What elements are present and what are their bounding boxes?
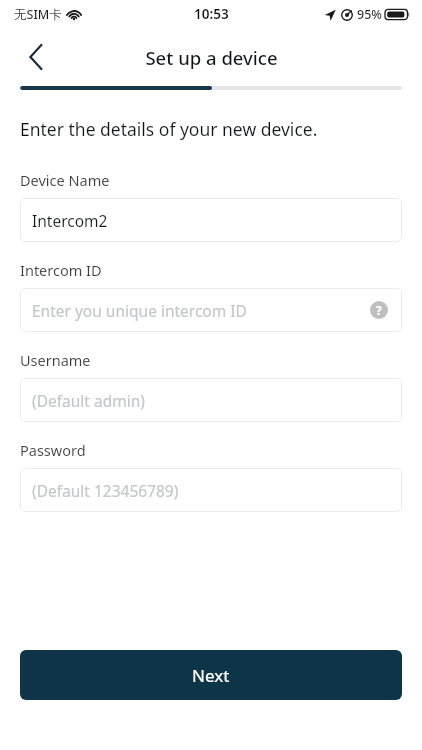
staticText: 无SIM卡 bbox=[14, 6, 62, 23]
staticText: 95% bbox=[357, 6, 382, 23]
staticText: 10:53 bbox=[194, 5, 229, 23]
button[interactable]: Back bbox=[16, 37, 56, 77]
staticText: Enter the details of your new device. bbox=[20, 117, 318, 141]
button[interactable]: Intercom2 bbox=[20, 198, 402, 242]
button[interactable]: Next bbox=[20, 650, 402, 700]
staticText: Username bbox=[20, 350, 91, 370]
button[interactable]: (Default 123456789) bbox=[20, 468, 402, 512]
button[interactable]: (Default admin) bbox=[20, 378, 402, 422]
staticText: Next bbox=[192, 664, 230, 687]
staticText: Password bbox=[20, 440, 86, 460]
staticText: Enter you unique intercom ID bbox=[32, 300, 247, 321]
staticText: Intercom ID bbox=[20, 260, 102, 280]
staticText: (Default admin) bbox=[32, 390, 145, 411]
staticText: (Default 123456789) bbox=[32, 480, 179, 501]
staticText: ? bbox=[376, 302, 382, 318]
button[interactable]: Enter you unique intercom ID bbox=[20, 288, 402, 332]
staticText: Intercom2 bbox=[32, 210, 108, 231]
staticText: Device Name bbox=[20, 170, 110, 190]
staticText: Set up a device bbox=[145, 45, 278, 70]
button[interactable]: Help about intercom ID bbox=[368, 299, 390, 321]
